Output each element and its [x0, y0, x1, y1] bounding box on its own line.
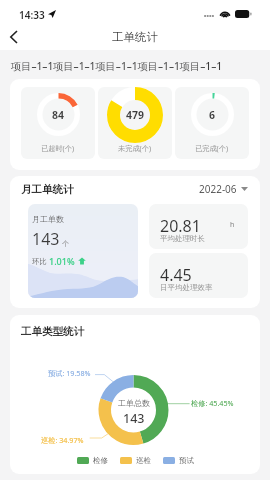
staticText: 6 [209, 108, 216, 122]
button[interactable]: 月工单数 [28, 204, 138, 298]
staticText: 巡检 [136, 456, 151, 465]
staticText: 月工单统计 [21, 183, 74, 196]
staticText: 项目–1–1项目–1–1项目–1–1项目–1–1项目–1–1 [11, 59, 223, 73]
staticText: 工单统计 [112, 30, 158, 44]
staticText: 143 [123, 410, 145, 427]
staticText: 4.45 [160, 264, 192, 286]
staticText: 143 [32, 228, 60, 250]
button[interactable]: 2022-06 [199, 182, 248, 196]
staticText: 检修: 45.45% [191, 398, 234, 408]
staticText: 工单总数 [118, 398, 150, 408]
button[interactable]: 预试 [163, 456, 194, 465]
staticText: h [230, 220, 235, 230]
staticText: 479 [126, 108, 145, 122]
staticText: 平均处理时长 [160, 234, 205, 243]
staticText: 未完成(个) [118, 143, 152, 153]
staticText: 环比 [32, 256, 49, 266]
button[interactable]: 检修 [77, 456, 108, 465]
button[interactable]: 84 [21, 87, 95, 159]
staticText: 2022-06 [199, 182, 237, 196]
button[interactable]: 479 [98, 87, 172, 159]
staticText: 84 [52, 108, 65, 122]
staticText: 已超时(个) [41, 143, 75, 153]
staticText: 预试: 19.58% [48, 368, 91, 378]
button[interactable]: 巡检 [120, 456, 151, 465]
button[interactable]: 20.81 [149, 204, 248, 249]
staticText: 巡检: 34.97% [41, 435, 84, 445]
button[interactable]: 4.45 [149, 253, 248, 298]
staticText: 预试 [179, 456, 194, 465]
staticText: 检修 [93, 456, 108, 465]
staticText: 1.01% [49, 255, 75, 267]
button[interactable]: Back [0, 24, 26, 50]
staticText: 20.81 [160, 215, 201, 237]
staticText: 14:33 [19, 8, 45, 22]
staticText: 个 [62, 239, 69, 248]
button[interactable]: 6 [175, 87, 249, 159]
staticText: 日平均处理效率 [160, 283, 213, 292]
staticText: 工单类型统计 [21, 325, 84, 338]
staticText: 已完成(个) [195, 143, 229, 153]
staticText: 月工单数 [32, 214, 64, 224]
